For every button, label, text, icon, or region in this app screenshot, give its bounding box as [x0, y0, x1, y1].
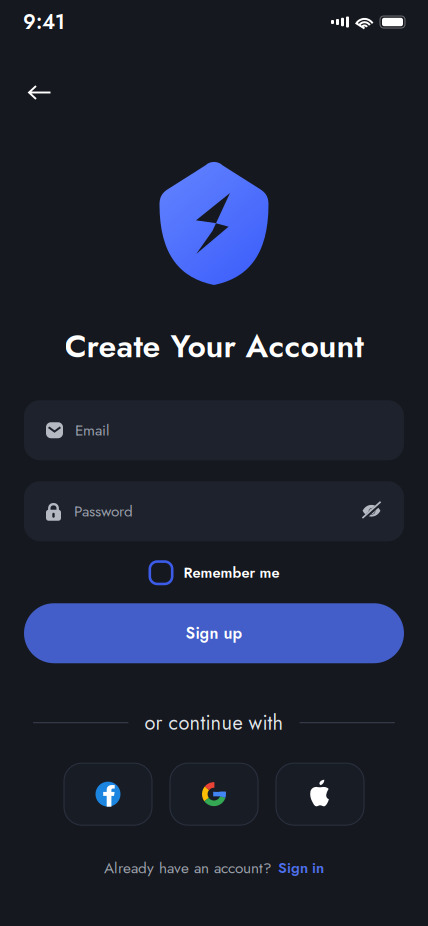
button[interactable]: Sign in [278, 857, 324, 878]
button[interactable]: Continue with Google [170, 763, 258, 825]
staticText: or continue with [144, 708, 283, 737]
staticText: Create Your Account [64, 323, 363, 369]
staticText: Password [74, 500, 133, 522]
staticText: Sign in [278, 857, 324, 878]
button[interactable]: Continue with Facebook [64, 763, 152, 825]
staticText: Email [75, 419, 110, 441]
staticText: Already have an account? [104, 857, 272, 879]
staticText: 9:41 [23, 7, 65, 36]
button[interactable]: Continue with Apple [276, 763, 364, 825]
button[interactable]: Back [16, 73, 63, 112]
button[interactable]: Sign up [24, 603, 404, 663]
button[interactable]: Show password [362, 503, 382, 520]
button[interactable]: Remember me [148, 555, 279, 590]
staticText: Sign up [185, 622, 242, 645]
staticText: Remember me [183, 562, 279, 583]
